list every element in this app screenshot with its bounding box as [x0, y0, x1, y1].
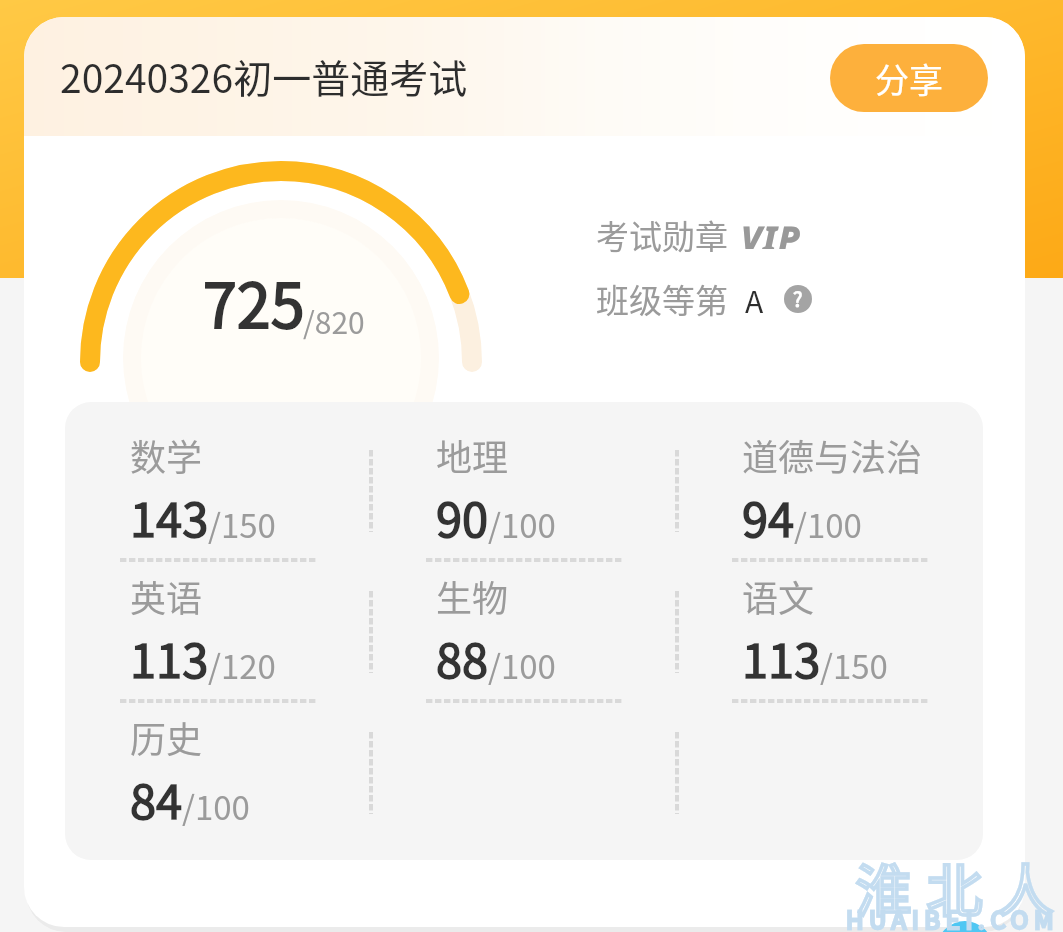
staticText: /100: [488, 641, 556, 689]
staticText: /150: [820, 641, 888, 689]
staticText: ?: [793, 285, 803, 312]
button[interactable]: 生物: [436, 570, 676, 691]
staticText: 历史: [130, 711, 203, 763]
staticText: 143: [130, 482, 209, 550]
button[interactable]: 班级等第: [596, 275, 812, 323]
button[interactable]: 英语: [130, 570, 370, 691]
staticText: 20240326初一普通考试: [60, 48, 468, 104]
staticText: 90: [436, 482, 489, 550]
staticText: A: [745, 278, 764, 321]
button[interactable]: Help: [784, 285, 812, 313]
staticText: 113: [130, 623, 209, 691]
staticText: 94: [742, 482, 795, 550]
staticText: 考试勋章: [596, 211, 728, 259]
button[interactable]: 数学: [130, 429, 370, 550]
button[interactable]: 道德与法治: [742, 429, 982, 550]
staticText: HUAIBEI.COM: [846, 901, 1060, 932]
staticText: 113: [742, 623, 821, 691]
staticText: 语文: [742, 570, 815, 622]
button[interactable]: 地理: [436, 429, 676, 550]
staticText: 班级等第: [596, 275, 728, 323]
button[interactable]: 分享: [830, 44, 988, 112]
button[interactable]: 考试勋章: [596, 211, 805, 259]
staticText: 生物: [436, 570, 509, 622]
staticText: /100: [794, 500, 862, 548]
staticText: /820: [303, 299, 365, 342]
staticText: 淮北人: [848, 846, 1061, 923]
button[interactable]: 历史: [130, 711, 370, 832]
staticText: 84: [130, 764, 183, 832]
staticText: /150: [208, 500, 276, 548]
staticText: 英语: [130, 570, 203, 622]
staticText: 地理: [436, 429, 509, 481]
staticText: 数学: [130, 429, 203, 481]
staticText: 道德与法治: [742, 429, 923, 481]
staticText: /120: [208, 641, 276, 689]
staticText: 725: [203, 257, 305, 345]
staticText: /100: [182, 782, 250, 830]
staticText: 88: [436, 623, 489, 691]
staticText: 分享: [875, 54, 943, 103]
staticText: /100: [488, 500, 556, 548]
staticText: VIP: [741, 215, 802, 249]
button[interactable]: 语文: [742, 570, 982, 691]
